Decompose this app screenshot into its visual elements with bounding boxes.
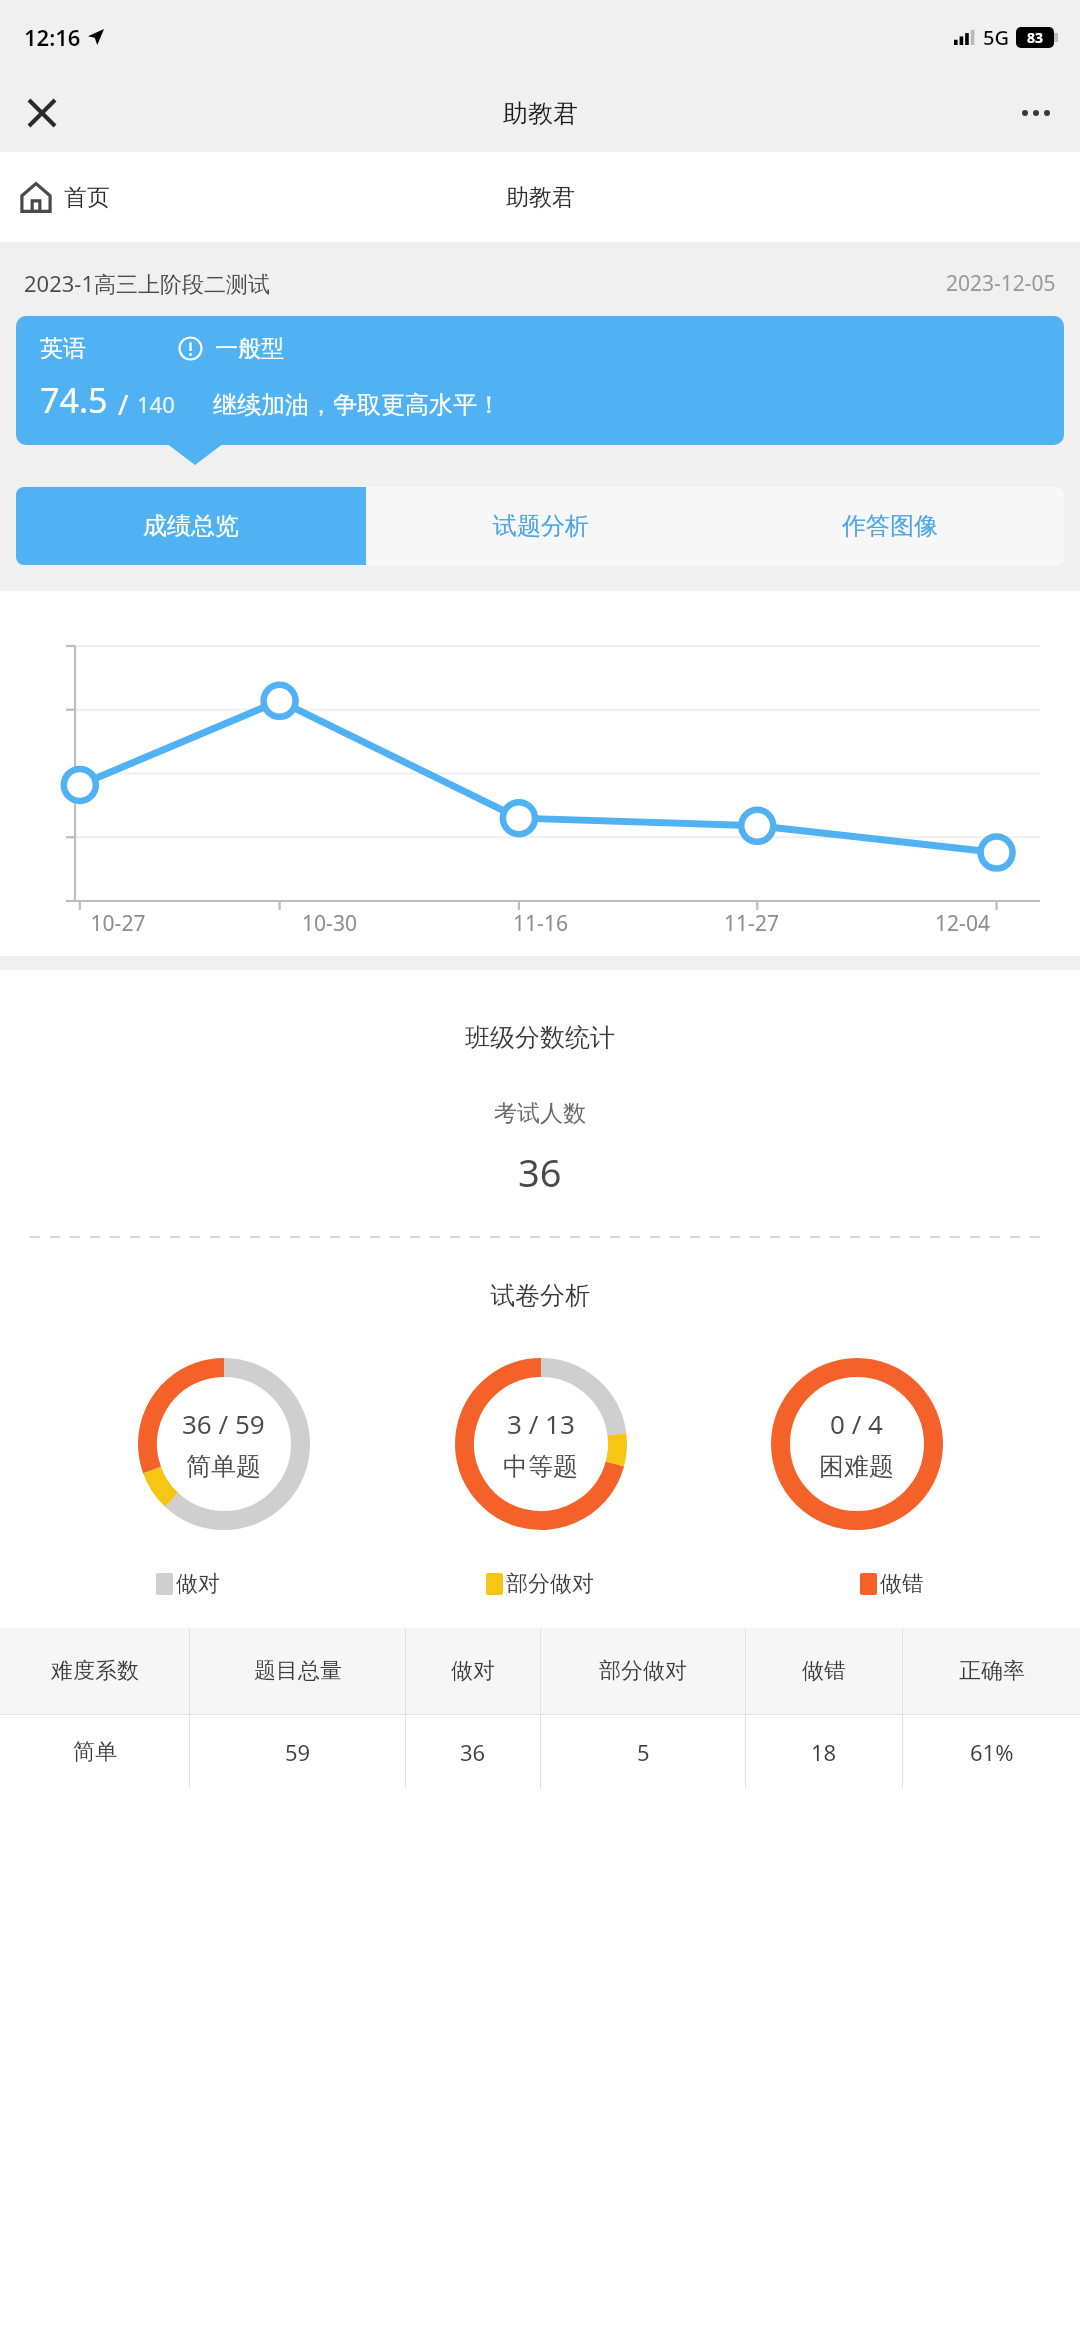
staticText: 140: [137, 389, 175, 419]
staticText: 试题分析: [493, 511, 589, 541]
staticText: 83: [1027, 28, 1044, 47]
button[interactable]: 试题分析: [366, 487, 715, 565]
staticText: 做错: [880, 1570, 924, 1598]
staticText: 一般型: [215, 334, 284, 363]
staticText: 成绩总览: [143, 511, 239, 541]
staticText: 36 / 59: [182, 1406, 265, 1441]
staticText: 首页: [64, 183, 110, 212]
staticText: 继续加油，争取更高水平！: [213, 390, 501, 420]
staticText: 困难题: [819, 1451, 894, 1482]
staticText: 简单: [73, 1738, 117, 1766]
staticText: 助教君: [506, 183, 575, 212]
staticText: 74.5: [40, 377, 108, 423]
staticText: 2023-12-05: [946, 269, 1056, 298]
staticText: 61%: [970, 1737, 1014, 1767]
staticText: 正确率: [959, 1657, 1025, 1685]
staticText: 试卷分析: [490, 1280, 590, 1311]
button[interactable]: 成绩总览: [16, 487, 366, 565]
staticText: 作答图像: [842, 511, 938, 541]
staticText: 难度系数: [51, 1657, 139, 1685]
staticText: 做对: [176, 1570, 220, 1598]
button[interactable]: 首页: [20, 181, 110, 213]
staticText: 英语: [40, 334, 86, 363]
staticText: /: [118, 385, 129, 423]
staticText: 18: [811, 1737, 837, 1767]
staticText: 助教君: [503, 98, 578, 129]
staticText: 中等题: [503, 1451, 578, 1482]
staticText: 10-30: [224, 909, 435, 938]
staticText: 11-16: [435, 909, 646, 938]
staticText: 部分做对: [506, 1570, 594, 1598]
staticText: 11-27: [646, 909, 857, 938]
staticText: 部分做对: [599, 1657, 687, 1685]
staticText: 3 / 13: [507, 1406, 575, 1441]
staticText: 简单题: [186, 1451, 261, 1482]
staticText: 做对: [451, 1657, 495, 1685]
staticText: 12:16: [24, 22, 81, 52]
button[interactable]: 作答图像: [715, 487, 1064, 565]
staticText: 题目总量: [254, 1657, 342, 1685]
staticText: 0 / 4: [830, 1406, 883, 1441]
staticText: 做错: [802, 1657, 846, 1685]
staticText: 2023-1高三上阶段二测试: [24, 268, 271, 298]
button[interactable]: More options: [1010, 87, 1062, 139]
staticText: 36: [460, 1737, 486, 1767]
staticText: 59: [285, 1737, 311, 1767]
button[interactable]: Close: [16, 87, 68, 139]
staticText: 考试人数: [494, 1099, 586, 1128]
staticText: 10-27: [12, 909, 224, 938]
staticText: 12-04: [857, 909, 1068, 938]
staticText: 36: [518, 1146, 562, 1198]
staticText: 5G: [983, 24, 1009, 51]
staticText: 5: [637, 1737, 650, 1767]
staticText: 班级分数统计: [465, 1022, 615, 1053]
